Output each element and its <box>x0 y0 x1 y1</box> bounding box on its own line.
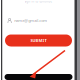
staticText: SUBMIT <box>30 38 46 43</box>
button[interactable]: SUBMIT <box>2 34 74 46</box>
button[interactable]: name@gmail.com <box>2 18 74 23</box>
staticText: Sign in to continue <box>24 0 52 3</box>
staticText: name@gmail.com <box>14 18 47 23</box>
